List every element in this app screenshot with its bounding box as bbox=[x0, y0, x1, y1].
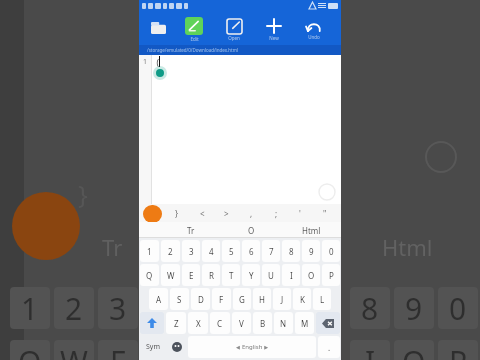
button[interactable]: V bbox=[232, 312, 251, 334]
button[interactable]: < bbox=[192, 204, 212, 222]
staticText: 3 bbox=[189, 246, 194, 257]
button[interactable]: Enter bbox=[318, 336, 340, 358]
staticText: 1 bbox=[147, 246, 152, 257]
staticText: W bbox=[60, 341, 88, 360]
staticText: } bbox=[175, 208, 179, 219]
staticText: 5 bbox=[229, 246, 234, 257]
staticText: K bbox=[300, 294, 305, 305]
button[interactable]: } bbox=[167, 204, 187, 222]
button[interactable]: J bbox=[273, 288, 291, 310]
staticText: 7 bbox=[269, 246, 274, 257]
button[interactable]: Emoji bbox=[168, 336, 186, 358]
button[interactable]: G bbox=[233, 288, 251, 310]
staticText: 8 bbox=[289, 246, 294, 257]
button[interactable]: O bbox=[302, 264, 320, 286]
button[interactable]: I bbox=[282, 264, 300, 286]
button[interactable]: ; bbox=[266, 204, 286, 222]
button[interactable]: H bbox=[253, 288, 271, 310]
staticText: F bbox=[219, 294, 224, 305]
button[interactable]: 5 bbox=[222, 240, 240, 262]
staticText: . bbox=[328, 342, 331, 353]
staticText: S bbox=[177, 294, 182, 305]
button[interactable]: Undo bbox=[301, 17, 327, 40]
button[interactable]: O bbox=[221, 222, 281, 238]
button[interactable]: 1 bbox=[140, 240, 159, 262]
button[interactable]: Edit bbox=[181, 14, 207, 42]
staticText: R bbox=[209, 270, 214, 281]
button[interactable]: D bbox=[191, 288, 210, 310]
staticText: D bbox=[198, 294, 204, 305]
staticText: I bbox=[365, 341, 376, 360]
button[interactable]: X bbox=[188, 312, 208, 334]
staticText: , bbox=[250, 208, 253, 219]
button[interactable]: F bbox=[212, 288, 231, 310]
button[interactable]: " bbox=[315, 204, 335, 222]
button[interactable]: Html bbox=[281, 222, 341, 238]
staticText: Html bbox=[302, 225, 321, 236]
button[interactable]: 3 bbox=[182, 240, 200, 262]
button[interactable]: 9 bbox=[302, 240, 320, 262]
button[interactable]: 0 bbox=[322, 240, 340, 262]
staticText: Html bbox=[382, 232, 433, 262]
staticText: ; bbox=[275, 208, 278, 219]
staticText: Open bbox=[228, 35, 240, 41]
staticText: 4 bbox=[209, 246, 214, 257]
button[interactable]: N bbox=[274, 312, 293, 334]
button[interactable]: K bbox=[293, 288, 311, 310]
button[interactable]: 4 bbox=[202, 240, 220, 262]
button[interactable]: S bbox=[170, 288, 189, 310]
staticText: W bbox=[167, 270, 175, 281]
button[interactable]: Backspace bbox=[316, 312, 340, 334]
button[interactable]: Open file bbox=[145, 15, 171, 41]
staticText: < bbox=[200, 208, 205, 219]
button[interactable]: Shift bbox=[140, 312, 164, 334]
button[interactable]: Space, English bbox=[188, 336, 316, 358]
button[interactable]: > bbox=[216, 204, 236, 222]
staticText: Tr bbox=[102, 232, 123, 262]
staticText: P bbox=[449, 341, 468, 360]
button[interactable]: 8 bbox=[282, 240, 300, 262]
staticText: ◀ bbox=[236, 344, 242, 351]
button[interactable]: , bbox=[241, 204, 261, 222]
button[interactable]: Sym bbox=[140, 336, 166, 358]
button[interactable]: New bbox=[261, 15, 287, 41]
staticText: 9 bbox=[309, 246, 314, 257]
staticText: N bbox=[280, 318, 287, 329]
staticText: Edit bbox=[190, 36, 199, 42]
button[interactable]: Q bbox=[140, 264, 159, 286]
button[interactable]: ' bbox=[290, 204, 310, 222]
button[interactable]: Quick actions bbox=[143, 205, 162, 223]
button[interactable]: Tr bbox=[161, 222, 221, 238]
button[interactable]: Y bbox=[242, 264, 260, 286]
button[interactable]: Z bbox=[166, 312, 186, 334]
button[interactable]: 2 bbox=[161, 240, 180, 262]
staticText: Z bbox=[174, 318, 179, 329]
staticText: 0 bbox=[449, 288, 467, 329]
staticText: New bbox=[269, 35, 279, 41]
staticText: G bbox=[239, 294, 245, 305]
staticText: 3 bbox=[109, 288, 127, 329]
button[interactable]: L bbox=[313, 288, 331, 310]
button[interactable]: W bbox=[161, 264, 180, 286]
staticText: 2 bbox=[168, 246, 173, 257]
button[interactable]: T bbox=[222, 264, 240, 286]
staticText: Undo bbox=[308, 34, 320, 40]
staticText: } bbox=[78, 176, 88, 211]
staticText: L bbox=[320, 294, 325, 305]
staticText: M bbox=[301, 318, 309, 329]
button[interactable]: 6 bbox=[242, 240, 260, 262]
button[interactable]: U bbox=[262, 264, 280, 286]
button[interactable]: M bbox=[295, 312, 314, 334]
staticText: A bbox=[156, 294, 162, 305]
button[interactable]: A bbox=[149, 288, 168, 310]
button[interactable]: R bbox=[202, 264, 220, 286]
staticText: U bbox=[268, 270, 274, 281]
staticText: 1 bbox=[143, 57, 148, 67]
button[interactable]: C bbox=[210, 312, 230, 334]
button[interactable]: Open bbox=[221, 16, 247, 41]
button[interactable]: 7 bbox=[262, 240, 280, 262]
button[interactable]: P bbox=[322, 264, 340, 286]
staticText: 6 bbox=[249, 246, 254, 257]
button[interactable]: E bbox=[182, 264, 200, 286]
button[interactable]: B bbox=[253, 312, 272, 334]
